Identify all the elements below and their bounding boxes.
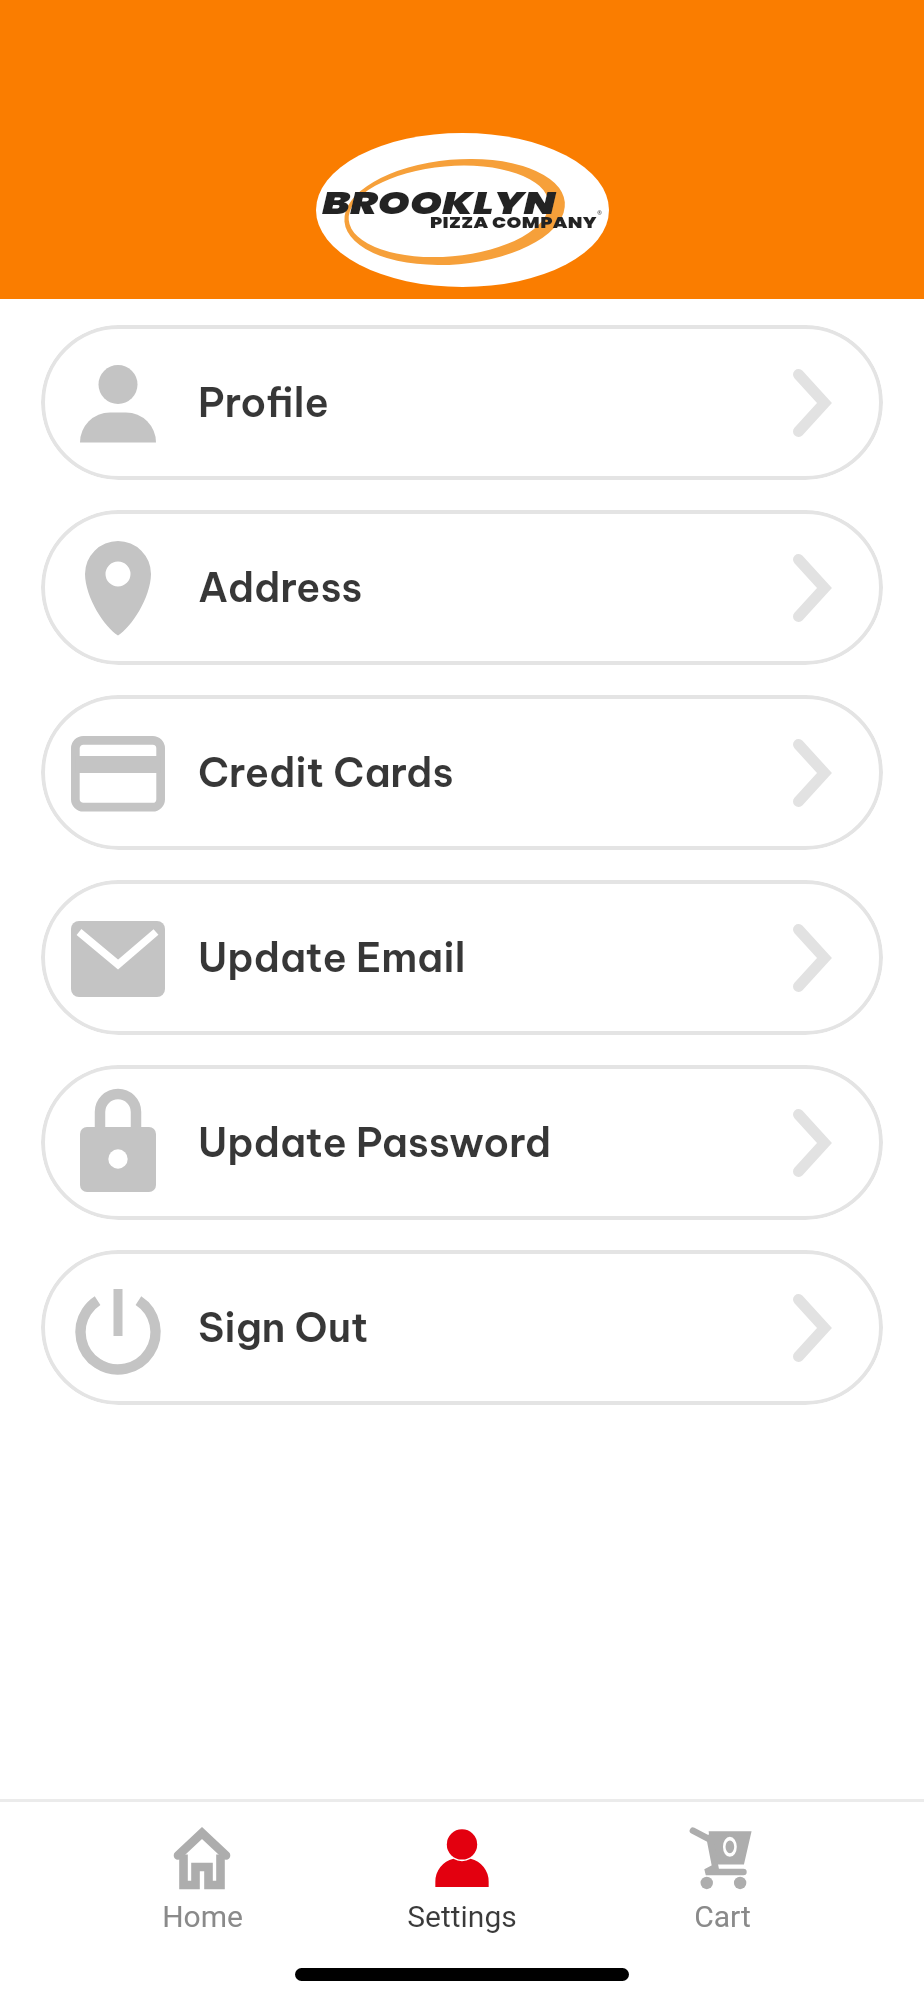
button[interactable]: Address	[41, 510, 883, 665]
staticText: BROOKLYN	[322, 180, 556, 225]
button[interactable]: Cart	[592, 1802, 852, 1945]
staticText: Home	[162, 1899, 243, 1934]
staticText: Update Password	[198, 1117, 552, 1168]
staticText: Credit Cards	[198, 747, 454, 798]
button[interactable]: Home	[72, 1802, 332, 1945]
button[interactable]: Profile	[41, 325, 883, 480]
other: Brooklyn Pizza Company	[316, 133, 609, 287]
staticText: PIZZA COMPANY	[430, 211, 598, 233]
staticText: ®	[597, 207, 603, 221]
button[interactable]: Credit Cards	[41, 695, 883, 850]
staticText: Address	[198, 562, 363, 613]
staticText: Settings	[407, 1899, 517, 1934]
staticText: Update Email	[198, 932, 466, 983]
staticText: Profile	[198, 377, 329, 428]
staticText: Sign Out	[198, 1302, 369, 1353]
button[interactable]: Settings	[332, 1802, 592, 1945]
button[interactable]: Sign Out	[41, 1250, 883, 1405]
button[interactable]: Update Password	[41, 1065, 883, 1220]
button[interactable]: Update Email	[41, 880, 883, 1035]
staticText: Cart	[694, 1899, 751, 1934]
